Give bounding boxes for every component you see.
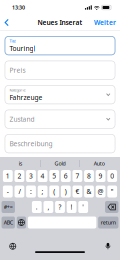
button[interactable]: #+=	[2, 201, 15, 213]
button[interactable]: Emoji	[6, 240, 19, 253]
staticText: .	[36, 203, 38, 211]
staticText: ?	[58, 203, 61, 211]
staticText: &	[86, 187, 91, 196]
staticText: ABC	[4, 219, 13, 226]
button[interactable]: !	[67, 201, 76, 213]
button[interactable]: @	[96, 185, 105, 197]
staticText: -	[7, 187, 9, 196]
staticText: 13:30	[12, 4, 25, 11]
staticText: 0	[110, 172, 114, 180]
staticText: ,	[47, 203, 49, 211]
staticText: /	[18, 187, 20, 196]
button[interactable]: 4	[38, 170, 47, 182]
button[interactable]: Auto	[80, 157, 118, 170]
staticText: Beschreibung	[9, 139, 52, 148]
staticText: Kategorie	[9, 87, 25, 93]
staticText: €	[75, 187, 79, 196]
button[interactable]: 2	[14, 170, 24, 182]
staticText: is	[19, 160, 23, 167]
button[interactable]: Dictation	[102, 239, 114, 253]
staticText: Titel	[9, 38, 16, 44]
staticText: 1	[6, 172, 10, 180]
staticText: )	[65, 187, 67, 196]
staticText: #+=	[4, 203, 13, 211]
staticText: 4	[41, 172, 45, 180]
staticText: Fahrzeuge	[9, 93, 42, 102]
staticText: Weiter	[94, 18, 116, 27]
staticText: @	[98, 187, 104, 196]
button[interactable]: ;	[38, 185, 47, 197]
button[interactable]: (	[49, 185, 59, 197]
button[interactable]: :	[26, 185, 36, 197]
staticText: return	[101, 219, 116, 226]
staticText: 5	[52, 172, 56, 180]
button[interactable]: Gold	[41, 157, 79, 170]
button[interactable]: 7	[72, 170, 82, 182]
button[interactable]: Back	[0, 15, 14, 30]
staticText: Neues Inserat	[37, 18, 82, 27]
staticText: 8	[87, 172, 91, 180]
button[interactable]: ,	[43, 201, 53, 213]
button[interactable]: ?	[55, 201, 65, 213]
button[interactable]: "	[107, 185, 117, 197]
button[interactable]: €	[72, 185, 82, 197]
staticText: "	[111, 187, 114, 196]
staticText: Preis	[9, 66, 25, 75]
button[interactable]: ABC	[2, 216, 15, 228]
staticText: '	[82, 203, 84, 211]
button[interactable]: 8	[84, 170, 94, 182]
staticText: Zustand	[9, 115, 34, 124]
button[interactable]: 1	[3, 170, 13, 182]
button[interactable]: 6	[61, 170, 71, 182]
staticText: 2	[17, 172, 21, 180]
button[interactable]	[28, 216, 96, 228]
staticText: 9	[99, 172, 103, 180]
button[interactable]: Delete	[105, 201, 118, 213]
button[interactable]: &	[84, 185, 94, 197]
staticText: Gold	[54, 160, 65, 167]
button[interactable]: return	[98, 216, 118, 228]
button[interactable]: Weiter	[90, 15, 120, 30]
staticText: :	[30, 187, 32, 196]
button[interactable]: 9	[96, 170, 105, 182]
staticText: Auto	[94, 160, 105, 167]
button[interactable]: .	[32, 201, 42, 213]
button[interactable]: '	[78, 201, 88, 213]
staticText: 7	[75, 172, 79, 180]
button[interactable]: Next keyboard	[17, 216, 26, 228]
button[interactable]: 0	[107, 170, 117, 182]
button[interactable]: /	[14, 185, 24, 197]
staticText: ;	[42, 187, 44, 196]
staticText: 3	[29, 172, 33, 180]
button[interactable]: )	[61, 185, 71, 197]
button[interactable]: 5	[49, 170, 59, 182]
staticText: 6	[64, 172, 68, 180]
button[interactable]: 3	[26, 170, 36, 182]
staticText: !	[71, 203, 73, 211]
button[interactable]: is	[2, 157, 40, 170]
staticText: (	[53, 187, 55, 196]
staticText: Touring	[9, 44, 33, 53]
button[interactable]: -	[3, 185, 13, 197]
